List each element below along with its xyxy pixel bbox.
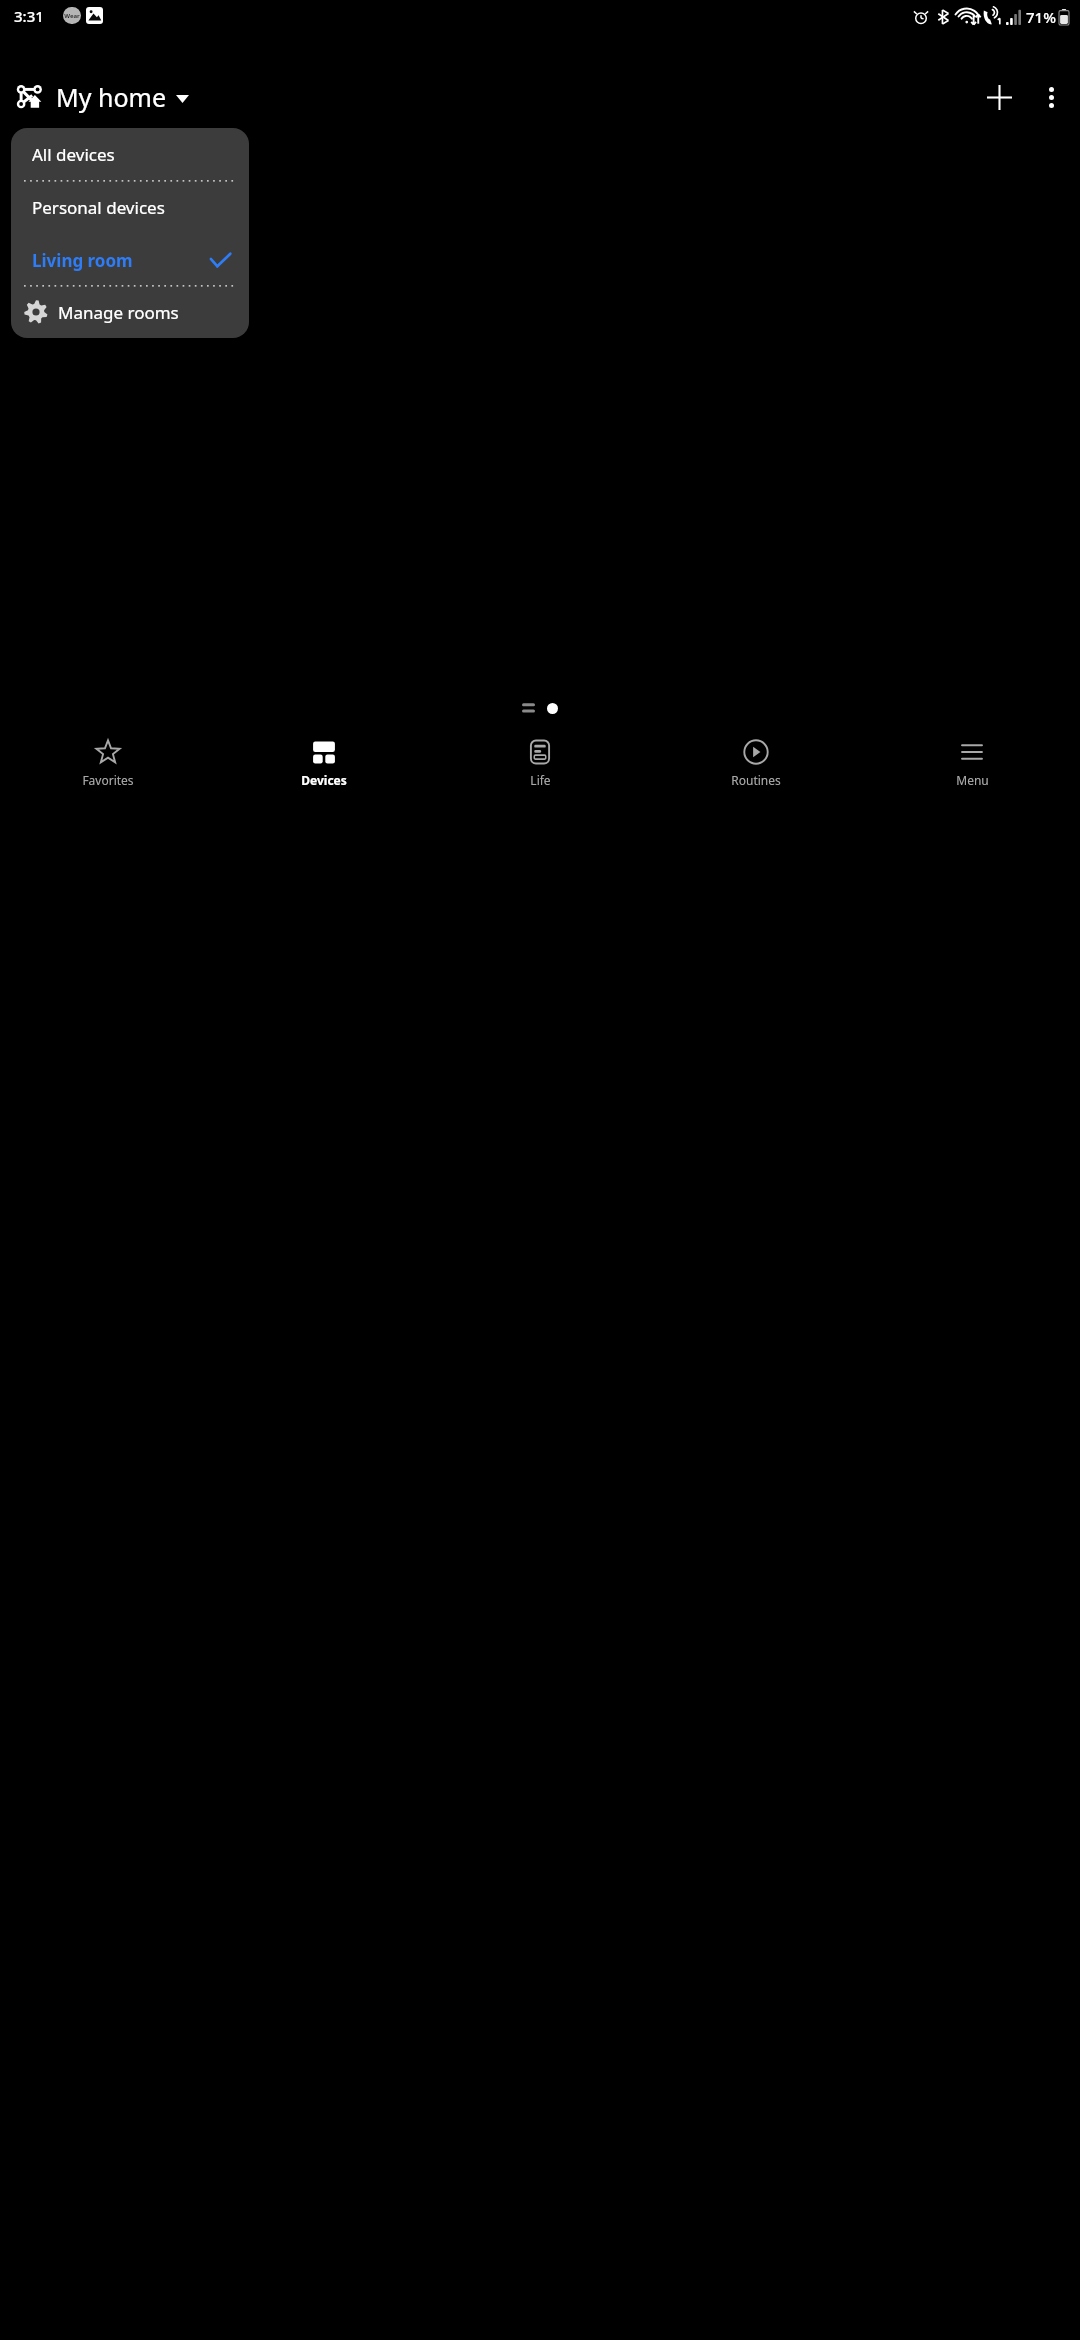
staticText: 3:31 — [14, 6, 44, 26]
button[interactable]: Life — [432, 730, 648, 816]
staticText: Routines — [731, 772, 781, 788]
staticText: Wear — [64, 12, 80, 20]
button[interactable]: Personal devices — [11, 181, 249, 234]
staticText: Manage rooms — [58, 301, 179, 324]
button[interactable]: Favorites — [0, 730, 216, 816]
button[interactable]: More options — [1027, 73, 1075, 121]
staticText: 71% — [1026, 7, 1056, 27]
staticText: Living room — [32, 249, 133, 272]
button[interactable]: All devices — [11, 128, 249, 181]
staticText: Menu — [956, 772, 989, 788]
staticText: Life — [530, 772, 551, 788]
staticText: Devices — [301, 772, 347, 788]
button[interactable]: Routines — [648, 730, 864, 816]
button[interactable]: Menu — [864, 730, 1080, 816]
button[interactable]: Manage rooms — [11, 286, 249, 338]
button[interactable]: Living room — [11, 234, 249, 286]
button[interactable]: My home — [11, 48, 194, 146]
staticText: My home — [56, 80, 166, 114]
staticText: Favorites — [82, 772, 134, 788]
staticText: All devices — [32, 143, 115, 166]
button[interactable]: Devices — [216, 730, 432, 816]
staticText: Personal devices — [32, 196, 165, 219]
button[interactable]: Add device — [975, 73, 1023, 121]
